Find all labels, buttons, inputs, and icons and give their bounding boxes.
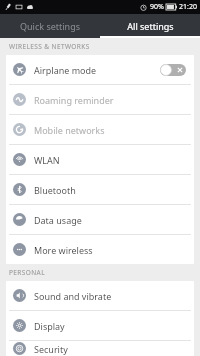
- staticText: More wireless: [34, 244, 93, 256]
- staticText: Display: [34, 320, 65, 332]
- staticText: Airplane mode: [34, 64, 97, 76]
- button[interactable]: Data usage: [6, 205, 194, 234]
- staticText: PERSONAL: [9, 268, 45, 277]
- staticText: All settings: [127, 20, 174, 32]
- staticText: WIRELESS & NETWORKS: [9, 42, 90, 51]
- staticText: WLAN: [34, 154, 60, 166]
- staticText: Roaming reminder: [34, 94, 114, 106]
- button[interactable]: Bluetooth: [6, 175, 194, 204]
- button[interactable]: Quick settings: [0, 14, 100, 38]
- button[interactable]: Display: [6, 311, 194, 340]
- button[interactable]: Sound and vibrate: [6, 281, 194, 310]
- staticText: 21:20: [179, 2, 197, 12]
- button[interactable]: Security: [6, 341, 194, 356]
- staticText: Quick settings: [20, 20, 80, 32]
- staticText: Bluetooth: [34, 184, 76, 196]
- button[interactable]: Airplane mode: [6, 55, 194, 84]
- staticText: Data usage: [34, 214, 82, 226]
- button[interactable]: WLAN: [6, 145, 194, 174]
- button[interactable]: Mobile networks: [6, 115, 194, 144]
- button[interactable]: Roaming reminder: [6, 85, 194, 114]
- button[interactable]: More wireless: [6, 235, 194, 264]
- button[interactable]: All settings: [100, 14, 200, 38]
- staticText: Sound and vibrate: [34, 290, 112, 302]
- staticText: Security: [34, 343, 68, 355]
- staticText: Mobile networks: [34, 124, 105, 136]
- staticText: 90%: [150, 2, 164, 12]
